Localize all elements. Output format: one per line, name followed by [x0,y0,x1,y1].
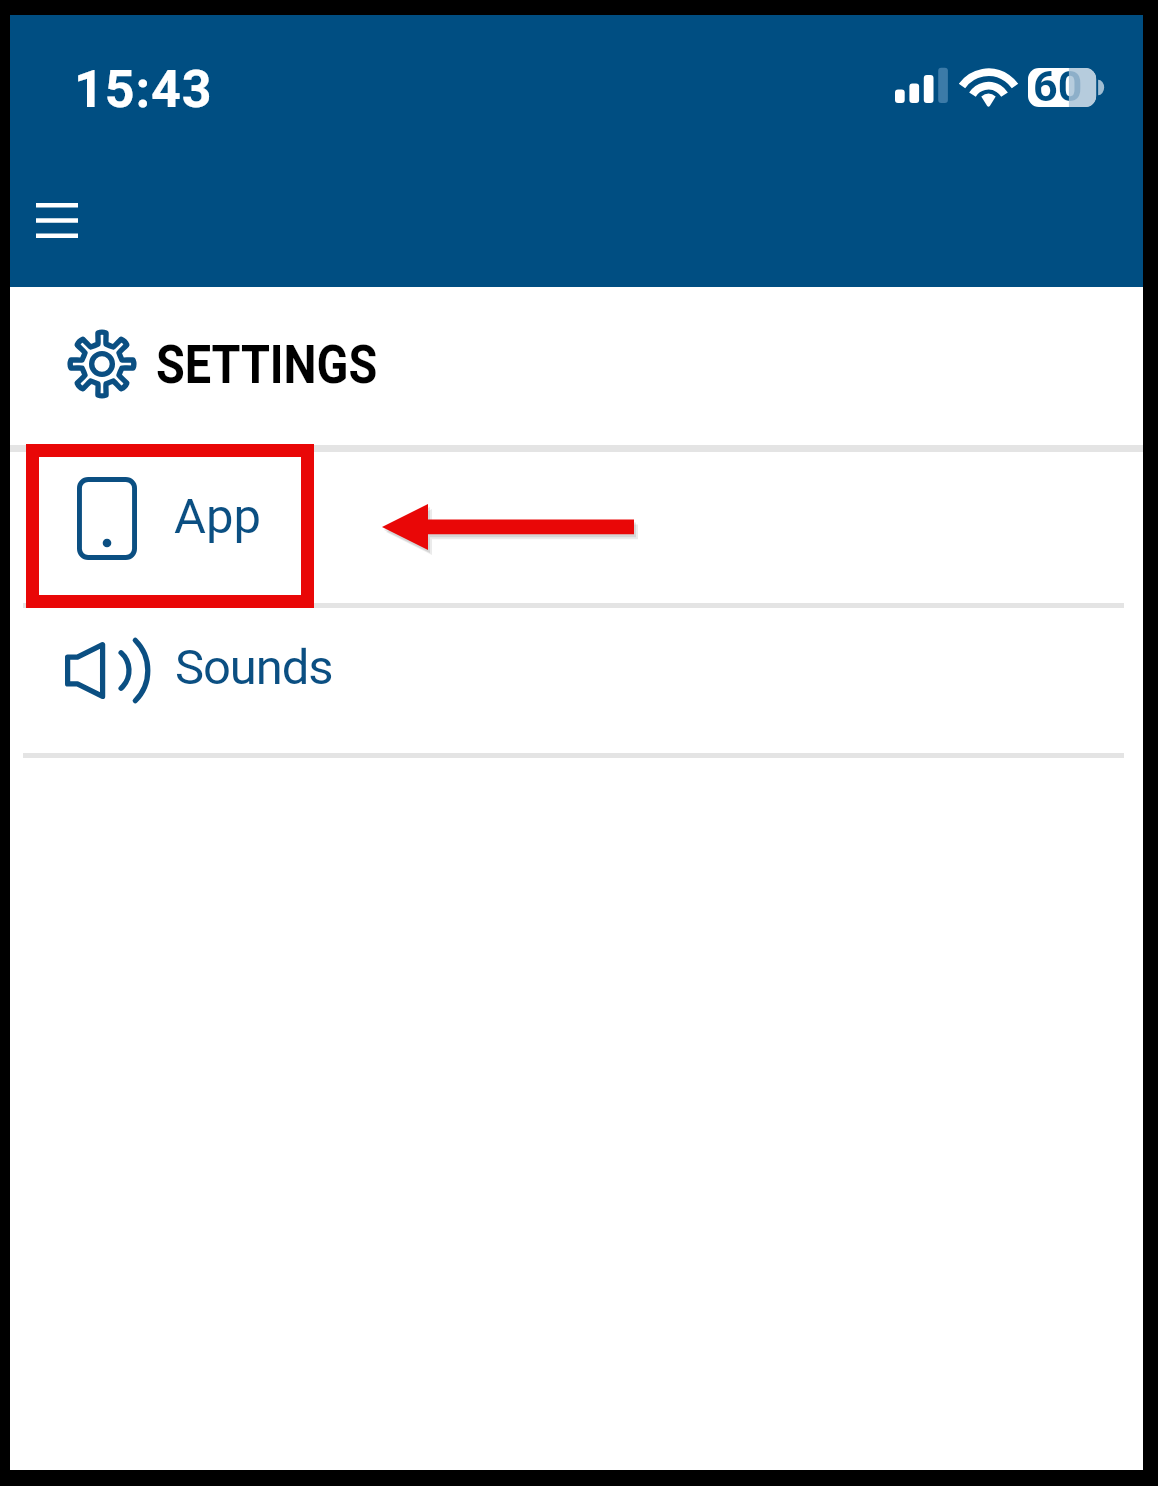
button[interactable]: Open navigation menu [6,175,108,265]
staticText: App [174,488,261,545]
staticText: Sounds [175,639,333,696]
staticText: 15:43 [74,59,213,120]
staticText: 60 [1033,61,1083,111]
button[interactable]: Sounds [10,608,1143,753]
staticText: SETTINGS [156,333,377,396]
button[interactable]: App [10,452,1143,603]
